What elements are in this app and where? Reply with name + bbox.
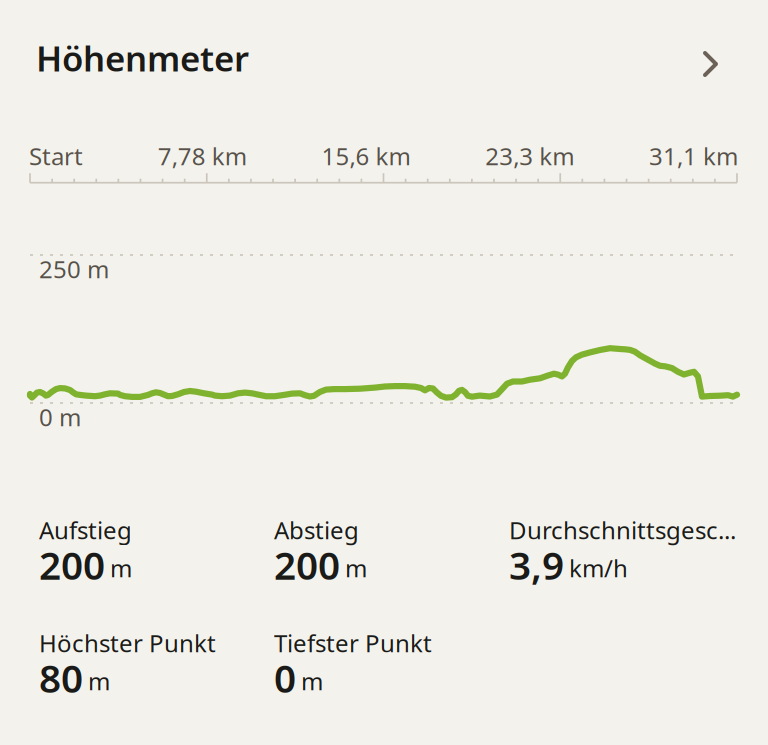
staticText: 250 m — [39, 253, 109, 285]
staticText: 200 — [39, 539, 105, 590]
staticText: m — [88, 665, 110, 697]
staticText: 0 m — [39, 401, 81, 433]
staticText: km/h — [569, 552, 628, 584]
staticText: 3,9 — [509, 539, 564, 590]
staticText: Höhenmeter — [36, 35, 249, 81]
staticText: Höchster Punkt — [39, 627, 216, 659]
staticText: 31,1 km — [649, 140, 738, 172]
staticText: Tiefster Punkt — [274, 627, 432, 659]
staticText: Start — [29, 140, 83, 172]
staticText: Aufstieg — [39, 514, 132, 546]
staticText: 0 — [274, 652, 296, 703]
staticText: 23,3 km — [485, 140, 574, 172]
staticText: Durchschnittsgesc... — [509, 514, 736, 546]
staticText: m — [301, 665, 323, 697]
staticText: 7,78 km — [158, 140, 247, 172]
staticText: Abstieg — [274, 514, 359, 546]
staticText: 15,6 km — [321, 140, 410, 172]
staticText: m — [110, 552, 132, 584]
staticText: m — [345, 552, 367, 584]
staticText: 200 — [274, 539, 340, 590]
staticText: 80 — [39, 652, 83, 703]
button[interactable]: Höhenmeter — [0, 35, 768, 79]
